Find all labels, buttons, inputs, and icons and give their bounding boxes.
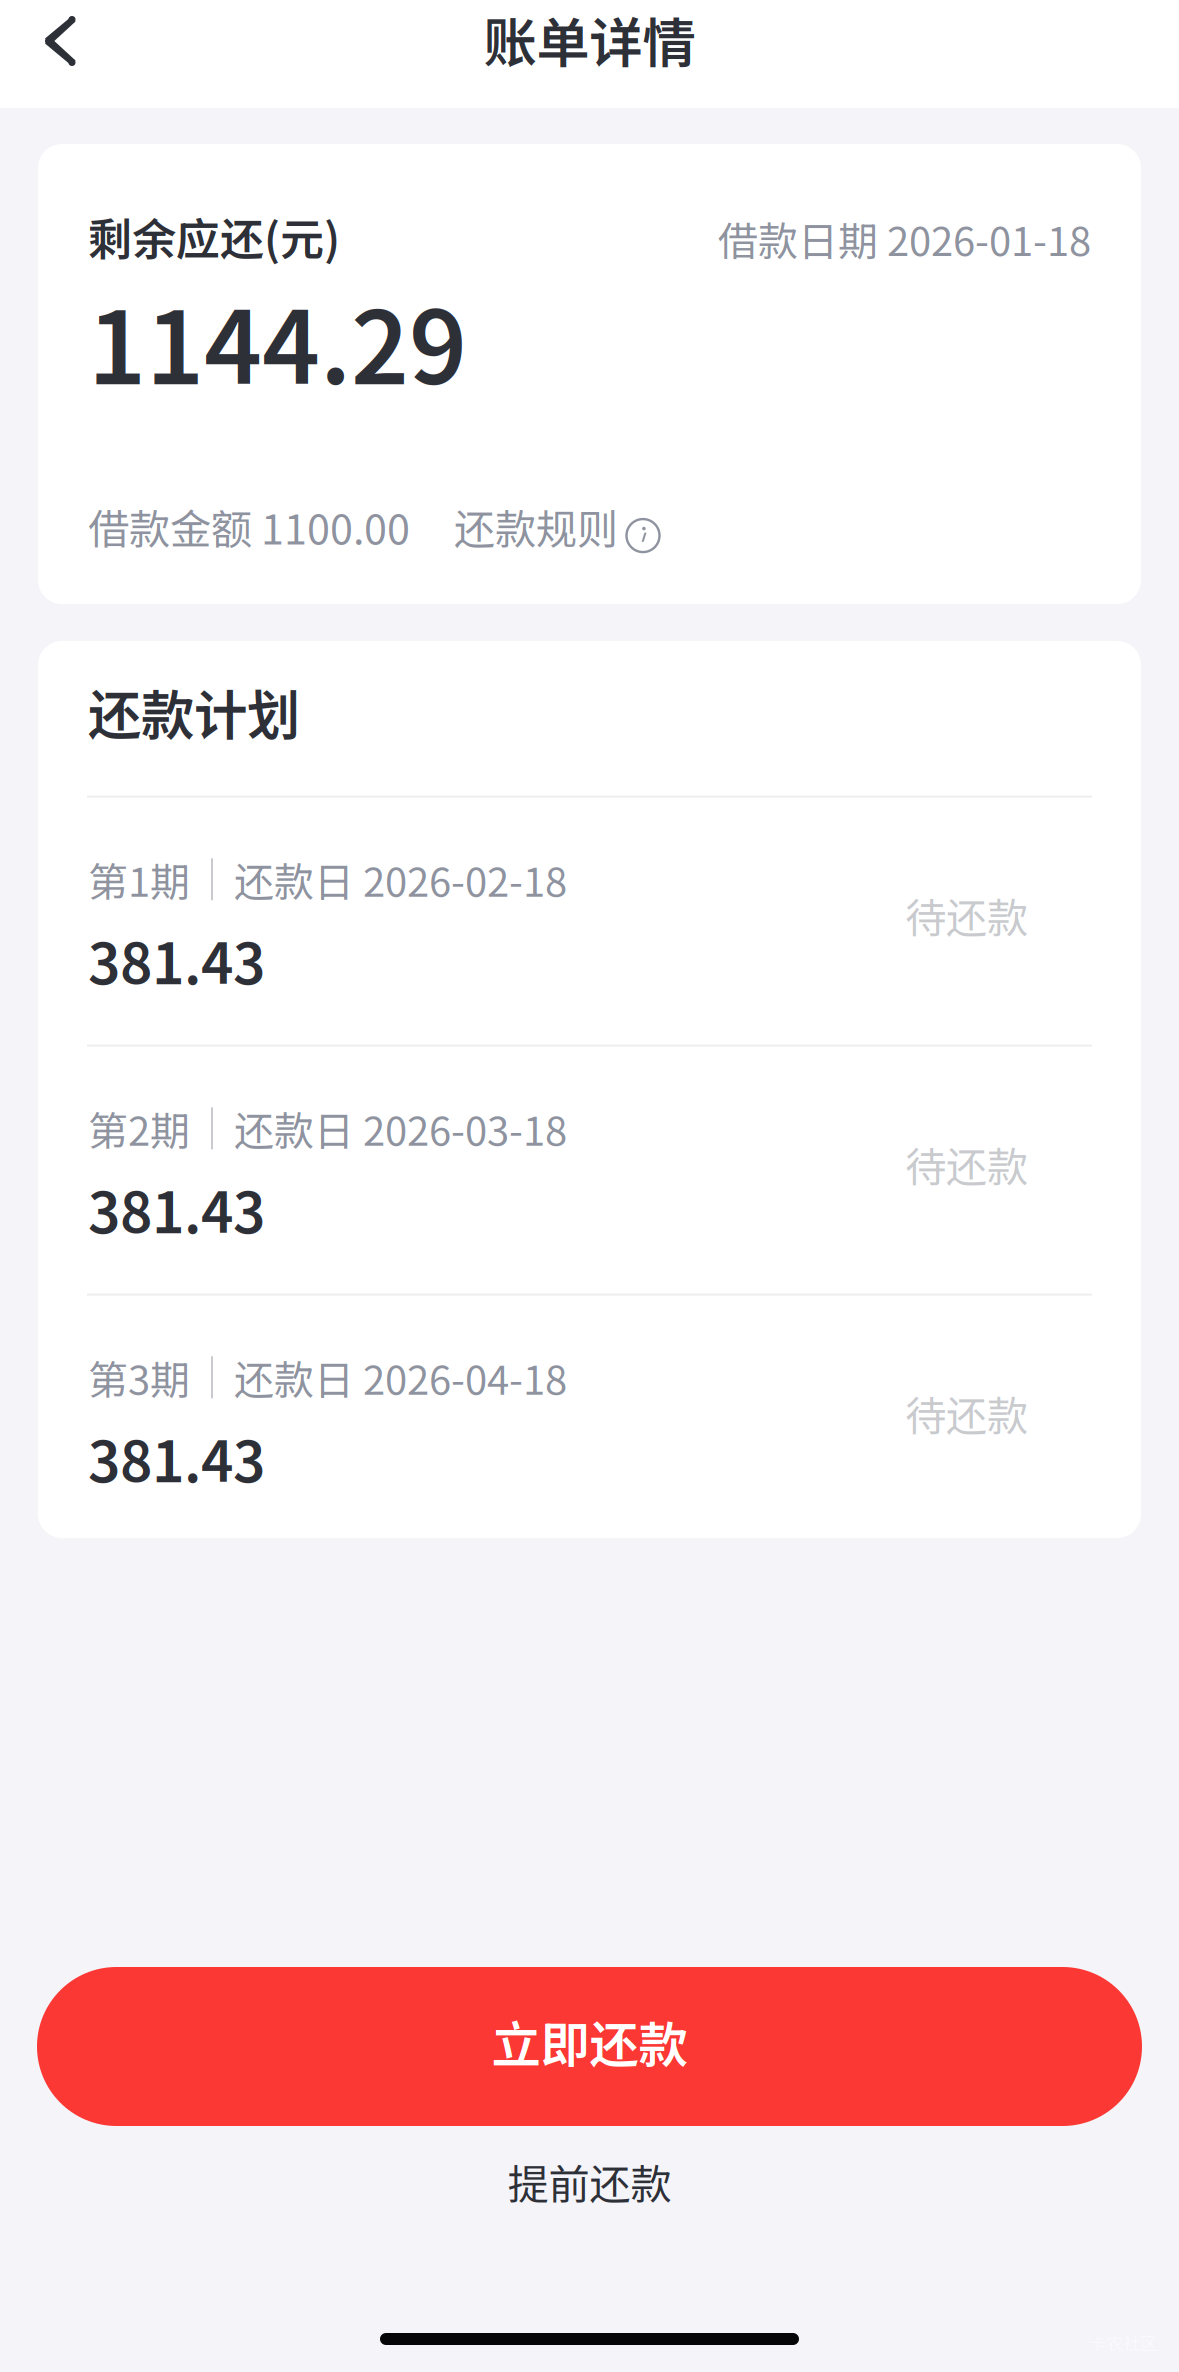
button[interactable]: 立即还款 <box>37 1967 1142 2126</box>
staticText: 借款日期 2026-01-18 <box>718 209 1091 267</box>
staticText: 待还款 <box>905 1383 1028 1443</box>
staticText: 第2期 <box>88 1099 190 1157</box>
staticText: 提前还款 <box>507 2151 671 2211</box>
staticText: 第3期 <box>88 1348 190 1406</box>
staticText: 待还款 <box>905 885 1028 945</box>
staticText: 还款规则 <box>454 497 618 556</box>
staticText: 剩余应还(元) <box>88 204 340 268</box>
button[interactable]: 提前还款 <box>0 2126 1179 2231</box>
staticText: 1144.29 <box>88 268 467 413</box>
staticText: 381.43 <box>88 1417 265 1498</box>
staticText: 第1期 <box>88 850 190 908</box>
staticText: 账单详情 <box>483 0 695 78</box>
button[interactable]: Back <box>0 0 165 108</box>
staticText: 立即还款 <box>491 2006 687 2077</box>
staticText: 待还款 <box>905 1134 1028 1194</box>
staticText: 还款日 2026-02-18 <box>234 850 567 908</box>
staticText: 还款日 2026-04-18 <box>234 1348 567 1406</box>
button[interactable]: 还款规则 <box>454 497 661 556</box>
staticText: 还款计划 <box>88 673 300 750</box>
staticText: 381.43 <box>88 919 265 1000</box>
staticText: 还款日 2026-03-18 <box>234 1099 567 1157</box>
staticText: 借款金额 1100.00 <box>88 497 410 556</box>
staticText: 381.43 <box>88 1168 265 1249</box>
